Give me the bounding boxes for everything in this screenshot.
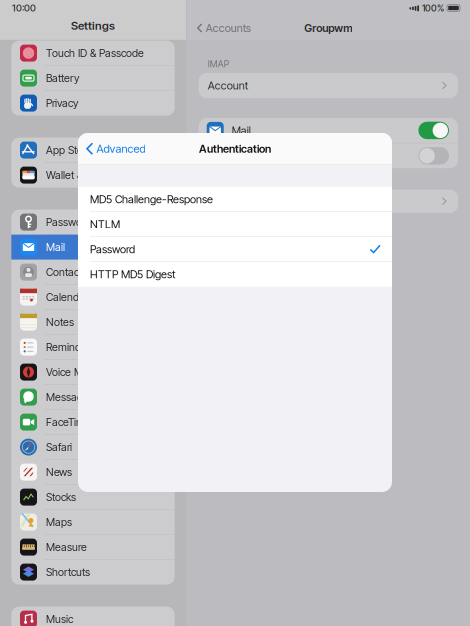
button[interactable]: Account bbox=[199, 73, 458, 98]
staticText: Safari bbox=[46, 441, 72, 453]
button[interactable]: Voice Memos bbox=[11, 360, 175, 385]
staticText: Stocks bbox=[46, 491, 76, 503]
staticText: Messages bbox=[46, 391, 94, 403]
staticText: IMAP bbox=[208, 58, 229, 69]
button[interactable]: Messages bbox=[11, 385, 175, 410]
button[interactable]: News bbox=[11, 460, 175, 485]
staticText: Wallet & Apple Pay bbox=[46, 169, 132, 181]
staticText: Privacy bbox=[46, 97, 78, 109]
button[interactable]: Maps bbox=[11, 510, 175, 535]
staticText: Mail bbox=[232, 124, 251, 137]
button[interactable]: Battery bbox=[11, 66, 175, 91]
staticText: MD5 Challenge-Response bbox=[90, 193, 213, 206]
button[interactable]: Advanced bbox=[199, 189, 458, 213]
staticText: Music bbox=[46, 613, 73, 625]
staticText: Advanced bbox=[208, 195, 256, 208]
staticText: NTLM bbox=[90, 218, 120, 231]
button[interactable]: Measure bbox=[11, 535, 175, 560]
button[interactable]: Password bbox=[78, 237, 392, 262]
button[interactable]: Notes bbox=[11, 310, 175, 335]
button[interactable]: NTLM bbox=[78, 212, 392, 237]
button[interactable]: Calendar bbox=[11, 285, 175, 310]
staticText: Accounts bbox=[206, 21, 251, 35]
staticText: Touch ID & Passcode bbox=[46, 47, 144, 59]
staticText: 100% bbox=[422, 2, 444, 14]
button[interactable]: Mail bbox=[11, 235, 175, 260]
button[interactable]: Reminders bbox=[11, 335, 175, 360]
button[interactable]: Touch ID & Passcode bbox=[11, 41, 175, 66]
staticText: News bbox=[46, 466, 72, 478]
staticText: 10:00 bbox=[12, 2, 36, 14]
button[interactable]: Advanced bbox=[87, 136, 145, 162]
button[interactable]: Safari bbox=[11, 435, 175, 460]
button[interactable]: Mail on bbox=[418, 122, 449, 139]
button[interactable]: Wallet & Apple Pay bbox=[11, 163, 175, 188]
button[interactable]: App Store bbox=[11, 138, 175, 163]
staticText: Passwords bbox=[46, 216, 96, 228]
button[interactable]: MD5 Challenge-Response bbox=[78, 187, 392, 212]
staticText: Notes bbox=[46, 316, 74, 328]
staticText: Authentication bbox=[199, 142, 271, 155]
staticText: App Store bbox=[46, 144, 92, 156]
staticText: Maps bbox=[46, 516, 72, 528]
button[interactable]: HTTP MD5 Digest bbox=[78, 262, 392, 287]
button[interactable]: Music bbox=[11, 607, 175, 626]
staticText: FaceTime bbox=[46, 416, 91, 428]
staticText: Groupwm bbox=[304, 21, 352, 35]
staticText: HTTP MD5 Digest bbox=[90, 268, 175, 281]
button[interactable]: Privacy bbox=[11, 91, 175, 116]
staticText: Advanced bbox=[96, 142, 145, 156]
staticText: Calendar bbox=[46, 291, 88, 303]
staticText: Contacts bbox=[46, 266, 87, 278]
staticText: Reminders bbox=[46, 341, 95, 353]
button[interactable]: Shortcuts bbox=[11, 560, 175, 585]
button[interactable]: Accounts bbox=[198, 21, 251, 35]
staticText: Mail bbox=[46, 241, 65, 253]
button[interactable]: Passwords bbox=[11, 210, 175, 235]
staticText: Measure bbox=[46, 541, 87, 553]
staticText: Notes bbox=[232, 149, 260, 162]
button[interactable]: FaceTime bbox=[11, 410, 175, 435]
button[interactable]: Notes off bbox=[418, 147, 449, 164]
button[interactable]: Stocks bbox=[11, 485, 175, 510]
staticText: Settings bbox=[71, 18, 115, 32]
staticText: Voice Memos bbox=[46, 366, 109, 378]
staticText: Account bbox=[208, 79, 248, 92]
button[interactable]: Contacts bbox=[11, 260, 175, 285]
staticText: Shortcuts bbox=[46, 566, 90, 578]
staticText: Battery bbox=[46, 72, 79, 84]
staticText: Password bbox=[90, 243, 135, 256]
